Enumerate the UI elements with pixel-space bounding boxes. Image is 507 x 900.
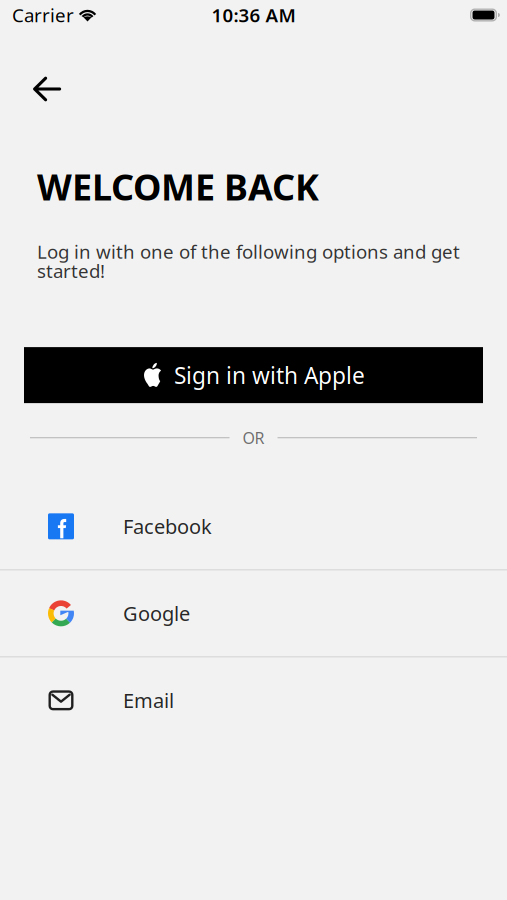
staticText: 10:36 AM	[211, 2, 295, 28]
button[interactable]: Sign in with Apple	[24, 347, 483, 403]
staticText: Log in with one of the following options…	[37, 239, 460, 283]
staticText: OR	[242, 427, 264, 448]
button[interactable]: Google	[0, 570, 507, 656]
button[interactable]: Facebook	[0, 483, 507, 569]
staticText: WELCOME BACK	[37, 162, 319, 211]
staticText: Email	[123, 687, 174, 714]
staticText: Google	[123, 600, 190, 627]
button[interactable]: Email	[0, 657, 507, 743]
staticText: Carrier	[12, 3, 74, 27]
staticText: Sign in with Apple	[174, 360, 365, 390]
staticText: Facebook	[123, 513, 212, 540]
button[interactable]: Back	[0, 63, 81, 115]
